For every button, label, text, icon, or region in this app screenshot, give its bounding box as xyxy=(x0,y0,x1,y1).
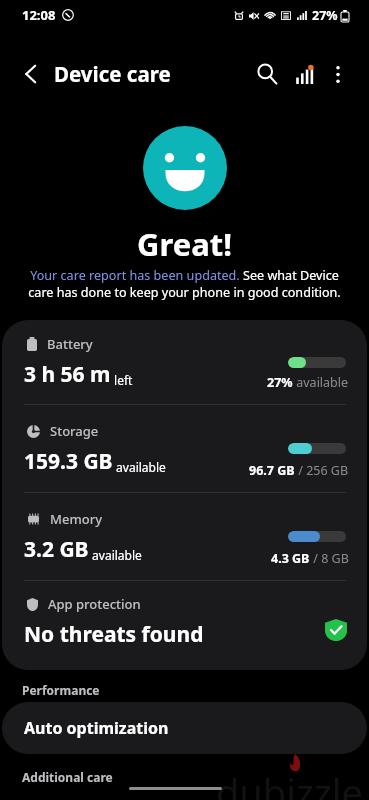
staticText: 12:08 xyxy=(22,6,56,24)
button[interactable]: Auto optimization xyxy=(2,702,367,754)
staticText: Memory xyxy=(50,510,103,528)
staticText: No threats found xyxy=(24,620,204,649)
staticText: Performance xyxy=(22,682,100,698)
button[interactable]: Memory xyxy=(2,493,367,580)
staticText: available xyxy=(113,459,166,475)
button[interactable]: Storage xyxy=(2,405,367,492)
staticText: left xyxy=(111,372,133,388)
staticText: Device care xyxy=(54,60,171,88)
button[interactable]: Usage statistics xyxy=(287,50,321,98)
staticText: Additional care xyxy=(22,769,113,785)
staticText: App protection xyxy=(48,595,141,613)
staticText: available xyxy=(89,547,142,563)
staticText: / 256 GB xyxy=(295,462,349,479)
button[interactable]: Battery xyxy=(2,320,367,404)
staticText: / 8 GB xyxy=(310,550,349,567)
staticText: 4.3 GB xyxy=(271,550,310,567)
staticText: Your care report has been updated. See w… xyxy=(18,267,351,301)
button[interactable]: App protection xyxy=(2,581,367,670)
staticText: dubizzle xyxy=(216,766,363,800)
staticText: 96.7 GB xyxy=(249,462,295,479)
button[interactable]: More options xyxy=(321,50,355,98)
staticText: 159.3 GB xyxy=(24,447,113,476)
staticText: 27% xyxy=(267,374,293,391)
button[interactable]: Navigate up xyxy=(0,50,54,98)
staticText: Battery xyxy=(47,335,93,353)
staticText: available xyxy=(293,374,349,391)
staticText: 3 h 56 m xyxy=(24,360,111,389)
staticText: Storage xyxy=(50,422,99,440)
staticText: Great! xyxy=(137,223,232,265)
staticText: 27% xyxy=(312,7,338,24)
button[interactable]: Search xyxy=(248,50,287,98)
staticText: Auto optimization xyxy=(24,717,169,739)
staticText: 3.2 GB xyxy=(24,535,89,564)
